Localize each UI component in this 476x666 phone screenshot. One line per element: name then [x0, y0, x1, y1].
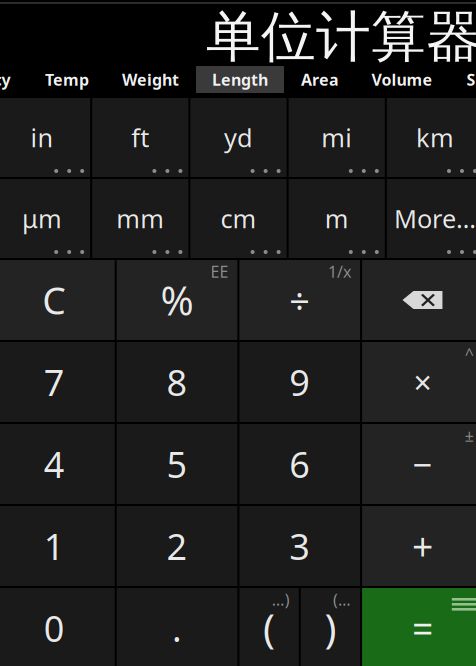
staticText: 8 [167, 358, 188, 406]
staticText: Speed [466, 69, 476, 90]
button[interactable]: 2 [117, 506, 237, 586]
staticText: ft [131, 121, 149, 154]
staticText: Area [301, 69, 339, 90]
button[interactable]: 4 [0, 424, 115, 504]
button[interactable]: Area [284, 66, 356, 93]
staticText: km [416, 121, 454, 154]
staticText: 单位计算器 [206, 3, 476, 70]
button[interactable]: × [362, 342, 476, 422]
staticText: 6 [289, 440, 310, 488]
button[interactable]: 0 [0, 588, 115, 666]
button[interactable]: 8 [117, 342, 237, 422]
staticText: ( [263, 601, 275, 654]
staticText: = [412, 603, 433, 653]
staticText: 3 [289, 522, 310, 570]
button[interactable]: Currency [0, 66, 29, 93]
button[interactable]: mm [92, 179, 188, 258]
button[interactable]: C [0, 260, 115, 340]
staticText: Currency [0, 69, 10, 90]
staticText: μm [22, 202, 62, 235]
staticText: …) [272, 589, 290, 610]
button[interactable]: Volume [356, 66, 448, 93]
staticText: 5 [167, 440, 188, 488]
button[interactable]: Weight [105, 66, 196, 93]
button[interactable]: . [117, 588, 237, 666]
staticText: % [161, 273, 194, 326]
staticText: ^ [465, 343, 474, 364]
button[interactable]: cm [190, 179, 287, 258]
staticText: 7 [44, 358, 65, 406]
button[interactable]: mi [289, 98, 385, 177]
button[interactable]: m [289, 179, 385, 258]
button[interactable]: in [0, 98, 90, 177]
staticText: (… [333, 589, 351, 610]
staticText: Volume [371, 69, 432, 90]
button[interactable]: μm [0, 179, 90, 258]
staticText: C [42, 275, 66, 325]
staticText: × [413, 361, 431, 403]
staticText: 0 [44, 604, 65, 652]
staticText: EE [210, 261, 228, 282]
button[interactable]: 9 [239, 342, 360, 422]
button[interactable]: Length [196, 66, 284, 93]
button[interactable]: = [362, 588, 476, 666]
button[interactable]: 1 [0, 506, 115, 586]
staticText: − [412, 441, 432, 487]
staticText: 4 [44, 440, 65, 488]
button[interactable]: 3 [239, 506, 360, 586]
button[interactable]: ft [92, 98, 188, 177]
staticText: cm [220, 202, 256, 235]
button[interactable]: yd [190, 98, 287, 177]
button[interactable]: % [117, 260, 237, 340]
button[interactable]: More… [387, 179, 476, 258]
staticText: 1/x [328, 261, 351, 282]
button[interactable]: 6 [239, 424, 360, 504]
button[interactable]: − [362, 424, 476, 504]
staticText: . [172, 604, 182, 652]
staticText: More… [394, 202, 476, 235]
staticText: mm [116, 202, 164, 235]
button[interactable]: Speed [448, 66, 476, 93]
button[interactable]: Temp [29, 66, 105, 93]
button[interactable]: 5 [117, 424, 237, 504]
button[interactable]: 7 [0, 342, 115, 422]
staticText: ± [465, 425, 474, 446]
button[interactable]: ÷ [239, 260, 360, 340]
button[interactable]: ( [239, 588, 299, 666]
staticText: + [412, 521, 433, 571]
staticText: ÷ [289, 276, 310, 324]
staticText: 1 [44, 522, 65, 570]
staticText: Weight [122, 69, 179, 90]
button[interactable]: + [362, 506, 476, 586]
staticText: Length [212, 69, 268, 90]
staticText: ) [324, 601, 336, 654]
staticText: m [325, 202, 349, 235]
staticText: mi [321, 121, 352, 154]
button[interactable]: ) [301, 588, 360, 666]
button[interactable] [362, 260, 476, 340]
button[interactable]: km [387, 98, 476, 177]
staticText: 2 [167, 522, 188, 570]
staticText: 9 [289, 358, 310, 406]
staticText: yd [224, 121, 253, 154]
staticText: in [31, 121, 54, 154]
staticText: Temp [45, 69, 89, 90]
